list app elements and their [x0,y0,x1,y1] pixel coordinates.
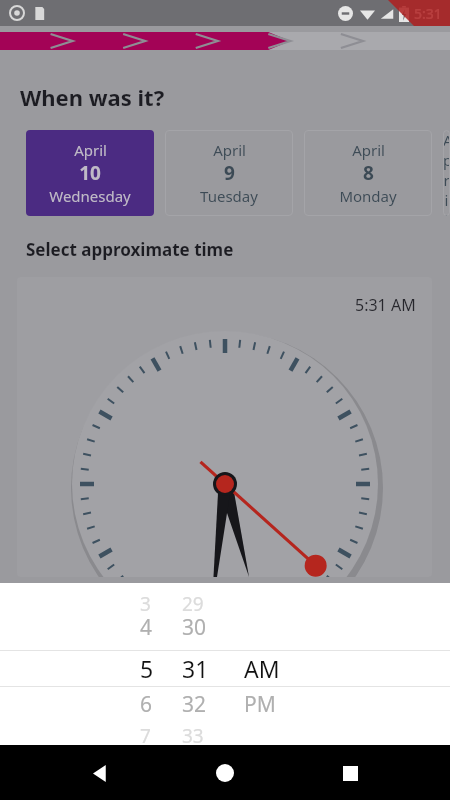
staticText: 6 [140,690,153,719]
staticText: April [443,130,450,216]
button[interactable]: 3 [140,583,182,745]
button[interactable]: AM [244,583,330,745]
button[interactable]: April [304,130,432,216]
staticText: 10 [79,160,101,186]
staticText: 3 [140,591,151,613]
staticText: PM [244,690,276,719]
staticText: 32 [182,690,207,719]
staticText: Select approximate time [26,238,234,261]
staticText: AM [244,653,280,684]
staticText: 29 [182,591,204,613]
button[interactable]: Home [201,749,249,797]
staticText: April [74,140,107,160]
staticText: 5:31 [414,4,442,23]
staticText: Monday [339,186,397,206]
staticText: 5 [140,653,154,684]
staticText: April [213,140,246,160]
staticText: 4 [140,613,153,642]
button[interactable]: 29 [182,583,244,745]
staticText: 33 [182,723,204,743]
staticText: Tuesday [200,186,258,206]
staticText: 8 [363,160,374,186]
button[interactable]: Back [77,749,125,797]
button[interactable]: April [26,130,154,216]
staticText: 7 [140,723,151,743]
staticText: 30 [182,613,207,642]
staticText: April [352,140,385,160]
button[interactable]: Recents [326,749,374,797]
staticText: 5:31 AM [355,294,416,316]
staticText: 31 [182,653,209,684]
button[interactable]: April [165,130,293,216]
button[interactable]: April [443,130,450,216]
staticText: When was it? [20,82,165,112]
staticText: Wednesday [49,186,131,206]
staticText: 9 [224,160,235,186]
